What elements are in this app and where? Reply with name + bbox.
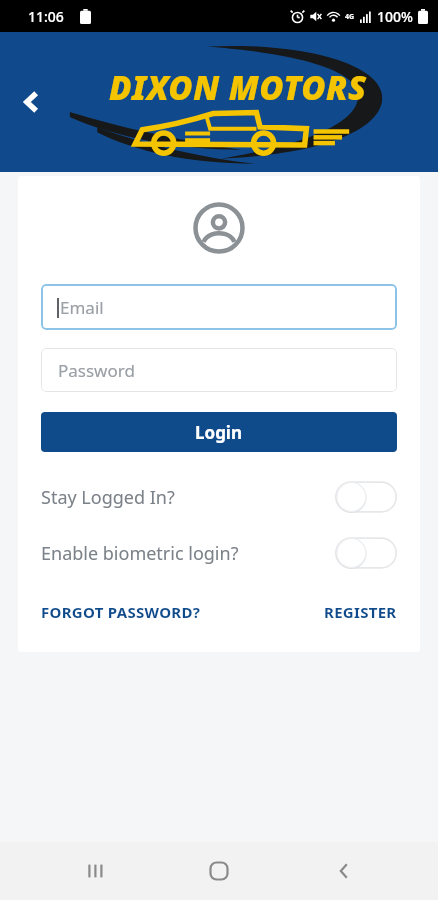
button[interactable]: Email xyxy=(41,284,397,330)
button[interactable]: Password xyxy=(41,348,397,392)
button[interactable]: Recent apps xyxy=(65,842,125,900)
staticText: 100% xyxy=(377,7,413,26)
button[interactable]: Enable biometric login? xyxy=(41,536,397,570)
button[interactable]: Stay Logged In? xyxy=(41,480,397,514)
button[interactable]: Back xyxy=(314,842,374,900)
staticText: Stay Logged In? xyxy=(41,485,175,510)
staticText: REGISTER xyxy=(324,602,397,622)
button[interactable]: Back xyxy=(8,78,56,126)
button[interactable]: Home xyxy=(189,842,249,900)
staticText: 11:06 xyxy=(28,7,64,26)
button[interactable]: FORGOT PASSWORD? xyxy=(41,598,201,626)
button[interactable]: REGISTER xyxy=(324,598,397,626)
staticText: Password xyxy=(58,359,135,382)
staticText: Login xyxy=(195,421,243,444)
staticText: FORGOT PASSWORD? xyxy=(41,602,201,622)
staticText: DIXON MOTORS xyxy=(109,65,367,110)
staticText: 4G xyxy=(345,12,355,22)
staticText: Email xyxy=(60,296,104,319)
button[interactable]: Login xyxy=(41,412,397,452)
staticText: Enable biometric login? xyxy=(41,541,239,566)
